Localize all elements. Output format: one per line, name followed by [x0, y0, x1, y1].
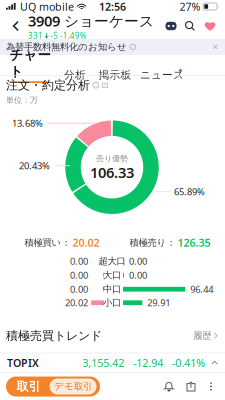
- staticText: 0.00: [70, 255, 88, 267]
- staticText: 65.89%: [174, 185, 205, 198]
- staticText: 20.02: [65, 296, 88, 309]
- staticText: 0.00: [70, 269, 88, 281]
- button[interactable]: 積極売買トレンド: [0, 327, 225, 345]
- button[interactable]: 分析: [57, 67, 93, 83]
- staticText: 27%: [179, 0, 200, 14]
- staticText: 96.44: [190, 283, 213, 295]
- staticText: 単位：万: [6, 95, 38, 105]
- button[interactable]: デモ取引: [49, 378, 96, 394]
- button[interactable]: 為替手数料無料化のお知らせ: [0, 39, 225, 55]
- staticText: デモ取引: [54, 381, 92, 392]
- staticText: 3909 ショーケース: [28, 11, 154, 30]
- staticText: ニュース: [140, 68, 184, 82]
- staticText: 12:56: [99, 0, 126, 14]
- staticText: i: [132, 44, 133, 50]
- button[interactable]: Notifications: [158, 374, 180, 398]
- staticText: 掲示板: [98, 68, 131, 82]
- staticText: 履歴: [193, 330, 211, 341]
- staticText: 積極買い：: [24, 237, 70, 248]
- button[interactable]: TOPIX: [0, 353, 225, 372]
- staticText: ✕: [212, 42, 219, 52]
- staticText: チャート: [9, 47, 50, 80]
- staticText: UQ mobile: [20, 0, 74, 14]
- button[interactable]: More options: [202, 374, 220, 398]
- staticText: -12.94: [133, 356, 163, 370]
- staticText: 売り優勢: [96, 154, 128, 164]
- button[interactable]: AI assistant: [162, 14, 180, 38]
- staticText: 20.02: [72, 236, 99, 250]
- button[interactable]: Search: [180, 14, 200, 38]
- button[interactable]: 取引: [7, 376, 49, 396]
- button[interactable]: ニュース: [137, 67, 187, 83]
- staticText: 13.68%: [12, 117, 43, 129]
- staticText: 積極売り：: [129, 237, 175, 248]
- button[interactable]: Add to favorites: [200, 14, 220, 38]
- staticText: 331: [28, 30, 43, 41]
- staticText: 20.43%: [19, 159, 50, 172]
- staticText: 126.35: [177, 236, 210, 250]
- staticText: 29.91: [147, 296, 170, 309]
- button[interactable]: チャート: [3, 47, 57, 83]
- staticText: 分析: [64, 68, 86, 82]
- staticText: 小口: [103, 297, 121, 308]
- staticText: 為替手数料無料化のお知らせ: [6, 41, 127, 53]
- staticText: 注文・約定分析: [6, 78, 90, 92]
- button[interactable]: Share: [180, 374, 202, 398]
- staticText: 超大口: [98, 255, 125, 267]
- staticText: -0.41%: [172, 356, 205, 370]
- staticText: 0.00: [70, 283, 88, 295]
- staticText: 106.33: [90, 162, 134, 182]
- staticText: 積極売買トレンド: [6, 328, 102, 343]
- button[interactable]: Back: [4, 13, 28, 39]
- staticText: TOPIX: [7, 356, 39, 370]
- staticText: 0.00: [129, 269, 147, 281]
- button[interactable]: 掲示板: [93, 67, 137, 83]
- staticText: 0.00: [129, 255, 147, 267]
- staticText: 3,155.42: [82, 356, 124, 370]
- staticText: 中口: [103, 283, 121, 295]
- staticText: -1.49%: [60, 30, 87, 41]
- staticText: -5: [50, 30, 58, 41]
- staticText: i: [95, 82, 96, 88]
- staticText: 大口: [103, 269, 121, 281]
- staticText: 取引: [16, 379, 40, 394]
